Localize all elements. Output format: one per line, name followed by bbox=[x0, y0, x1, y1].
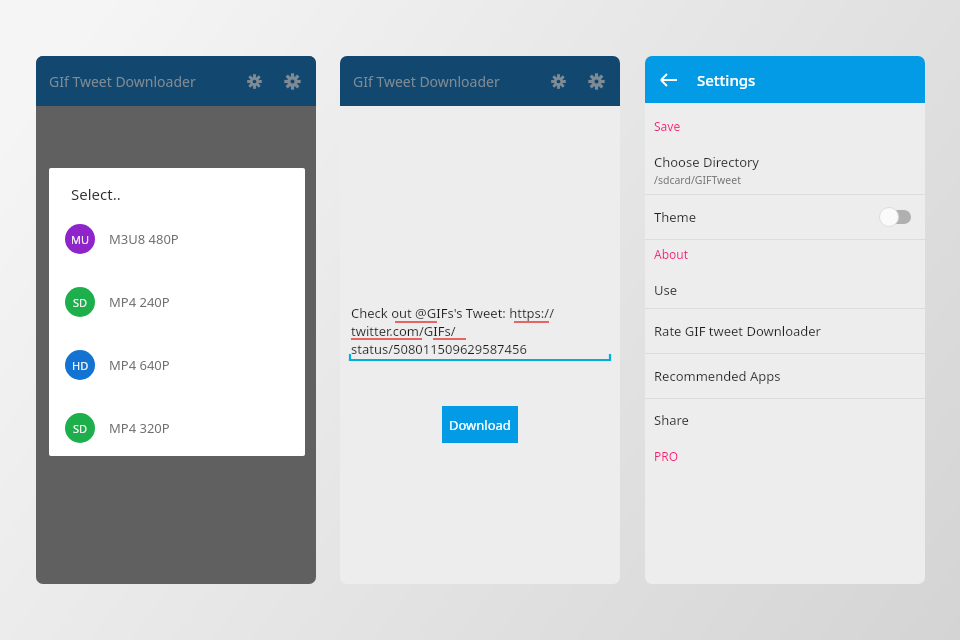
staticText: Rate GIF tweet Downloader bbox=[654, 322, 821, 340]
button[interactable]: MU bbox=[59, 215, 295, 263]
button[interactable]: Share bbox=[645, 399, 925, 441]
button[interactable]: Save bbox=[645, 112, 925, 140]
button[interactable]: Recommended Apps bbox=[645, 354, 925, 398]
staticText: About bbox=[654, 246, 689, 262]
button[interactable]: About bbox=[645, 240, 925, 268]
button[interactable]: SD bbox=[59, 404, 295, 452]
staticText: Share bbox=[654, 411, 689, 429]
staticText: GIf Tweet Downloader bbox=[49, 72, 196, 91]
staticText: MP4 240P bbox=[109, 293, 170, 311]
staticText: Theme bbox=[654, 208, 697, 226]
staticText: SD bbox=[73, 295, 88, 310]
staticText: GIf Tweet Downloader bbox=[353, 72, 500, 91]
button[interactable]: Settings bbox=[542, 65, 574, 97]
button[interactable]: HD bbox=[59, 341, 295, 389]
staticText: MP4 320P bbox=[109, 419, 170, 437]
staticText: Download bbox=[449, 416, 511, 434]
button[interactable]: SD bbox=[59, 278, 295, 326]
staticText: Use bbox=[654, 281, 678, 299]
staticText: Recommended Apps bbox=[654, 367, 781, 385]
staticText: MP4 640P bbox=[109, 356, 170, 374]
button[interactable]: Download bbox=[442, 406, 518, 443]
button[interactable]: More settings bbox=[276, 65, 308, 97]
staticText: status/508011509629587456 bbox=[351, 340, 527, 358]
button[interactable]: Settings bbox=[238, 65, 270, 97]
button[interactable]: Back bbox=[653, 64, 685, 96]
staticText: Check out @GIFs's Tweet: https:// bbox=[351, 304, 554, 322]
staticText: twitter.com/GIFs/ bbox=[351, 322, 456, 340]
button[interactable]: PRO bbox=[645, 441, 925, 471]
staticText: SD bbox=[73, 421, 88, 436]
button[interactable]: More settings bbox=[580, 65, 612, 97]
button[interactable]: Theme bbox=[645, 195, 925, 239]
staticText: HD bbox=[72, 358, 89, 373]
staticText: PRO bbox=[654, 448, 679, 464]
staticText: /sdcard/GIFTweet bbox=[654, 173, 741, 187]
button[interactable]: Choose Directory bbox=[645, 146, 925, 194]
staticText: M3U8 480P bbox=[109, 230, 179, 248]
button[interactable]: Rate GIF tweet Downloader bbox=[645, 309, 925, 353]
staticText: Select.. bbox=[71, 184, 121, 204]
staticText: MU bbox=[71, 232, 90, 247]
button[interactable]: Use bbox=[645, 272, 925, 308]
staticText: Settings bbox=[697, 70, 756, 90]
staticText: Choose Directory bbox=[654, 153, 760, 171]
staticText: Save bbox=[654, 118, 681, 134]
